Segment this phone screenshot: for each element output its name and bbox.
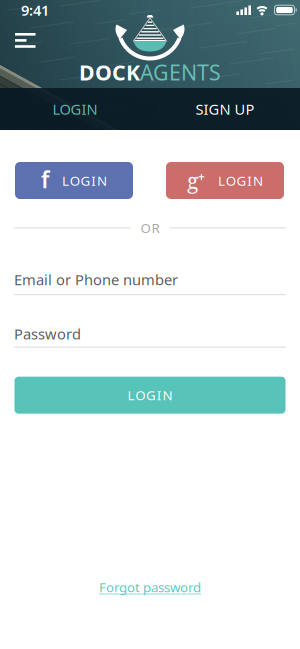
button[interactable]: f — [15, 162, 133, 199]
staticText: AGENTS — [140, 58, 221, 86]
staticText: Forgot password — [99, 578, 201, 596]
staticText: LOGIN — [62, 172, 107, 189]
staticText: LOGIN — [218, 172, 263, 189]
button[interactable]: Menu — [9, 27, 41, 54]
staticText: f — [41, 164, 49, 194]
staticText: Password — [14, 324, 81, 344]
button[interactable]: Forgot password — [99, 578, 201, 596]
staticText: DOCK — [79, 58, 140, 86]
staticText: 9:41 — [21, 0, 49, 20]
staticText: + — [198, 168, 205, 184]
staticText: SIGN UP — [195, 99, 254, 119]
staticText: Email or Phone number — [14, 270, 178, 289]
button[interactable]: g — [166, 162, 284, 199]
staticText: LOGIN — [52, 99, 97, 119]
staticText: OR — [140, 219, 159, 237]
staticText: LOGIN — [127, 386, 173, 404]
staticText: g — [187, 166, 198, 195]
button[interactable]: SIGN UP — [150, 88, 300, 130]
button[interactable]: LOGIN — [14, 377, 285, 414]
button[interactable]: LOGIN — [0, 88, 150, 130]
